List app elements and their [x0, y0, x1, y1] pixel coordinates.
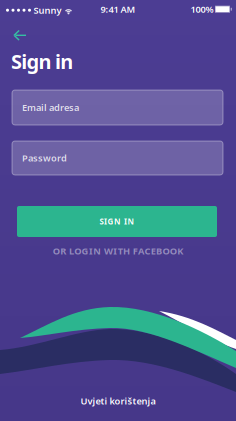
button[interactable]: Uvjeti korištenja	[0, 395, 236, 407]
staticText: Sign in	[11, 48, 73, 75]
button[interactable]: OR LOGIN WITH FACEBOOK	[0, 245, 236, 257]
staticText: Uvjeti korištenja	[80, 395, 155, 407]
staticText: Password	[22, 152, 67, 164]
staticText: Sunny	[33, 4, 61, 16]
staticText: SIGN IN	[99, 216, 134, 227]
staticText: 9:41 AM	[100, 3, 135, 15]
staticText: OR LOGIN WITH FACEBOOK	[53, 245, 183, 257]
button[interactable]: Email adresa	[12, 90, 223, 125]
staticText: 100%	[190, 3, 213, 15]
button[interactable]: Back	[0, 24, 42, 47]
staticText: Email adresa	[22, 101, 79, 114]
button[interactable]: Password	[12, 141, 223, 175]
button[interactable]: SIGN IN	[17, 206, 217, 237]
